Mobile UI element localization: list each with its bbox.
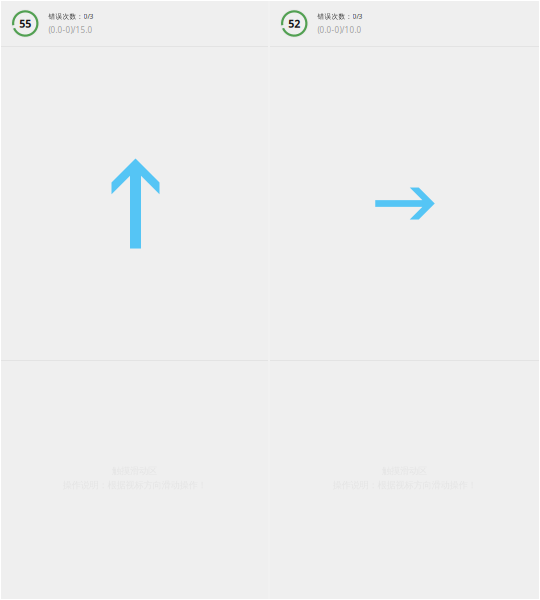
- button[interactable]: 视标 向上: [1, 47, 268, 360]
- staticText: (0.0-0)/15.0: [48, 25, 92, 35]
- staticText: (0.0-0)/10.0: [317, 25, 361, 35]
- staticText: 52: [288, 16, 300, 31]
- staticText: 错误次数：0/3: [48, 12, 93, 21]
- button[interactable]: 视标 向右: [270, 47, 539, 360]
- staticText: 错误次数：0/3: [317, 12, 362, 21]
- staticText: 55: [19, 16, 31, 31]
